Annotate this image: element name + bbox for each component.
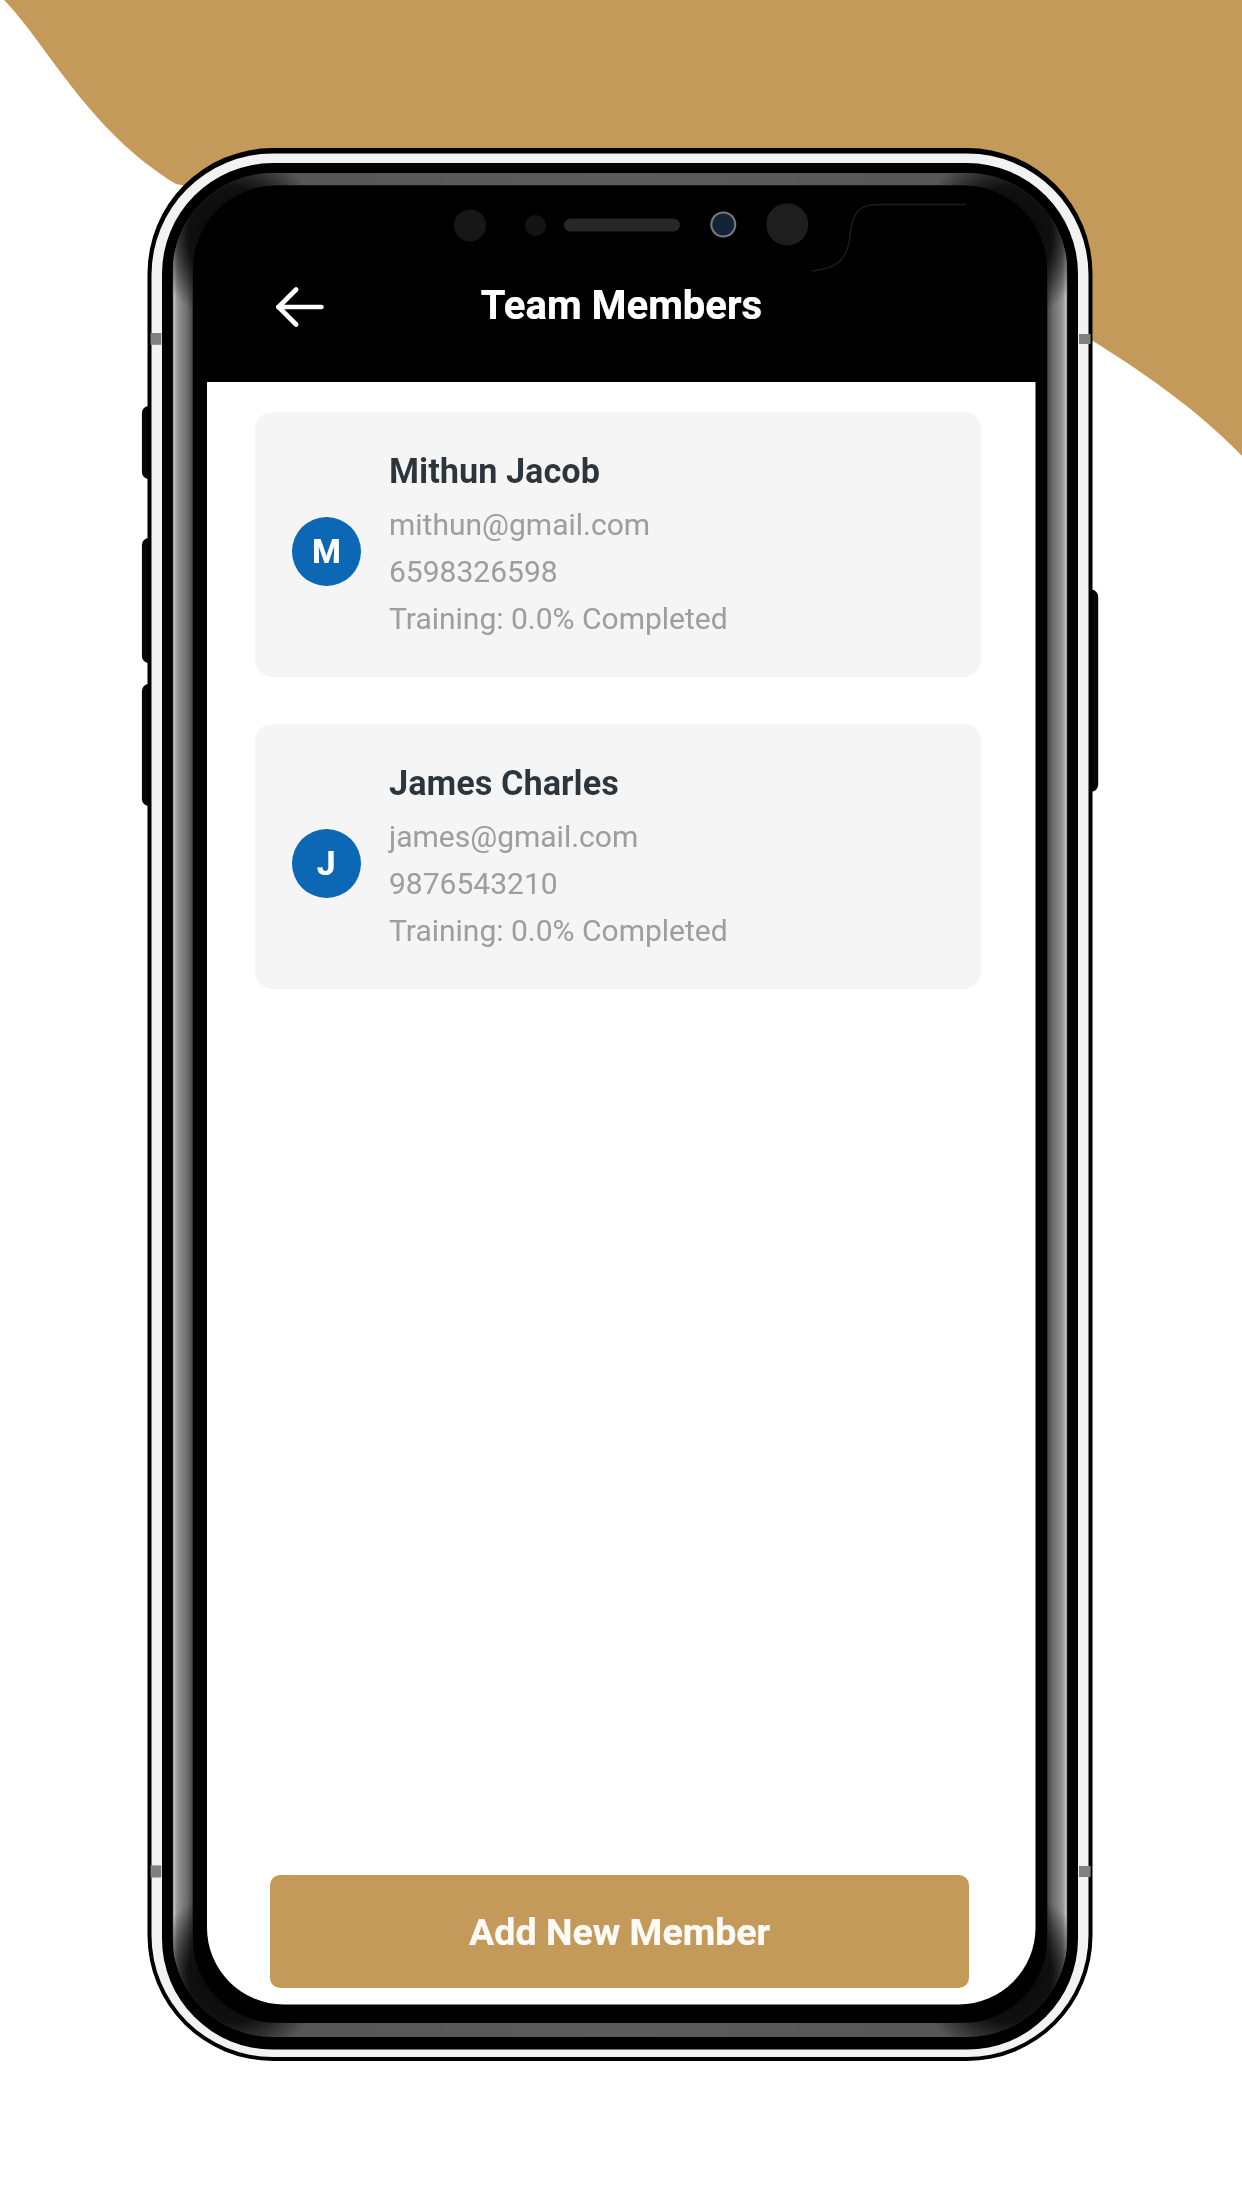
staticText: Mithun Jacob: [389, 451, 601, 491]
staticText: james@gmail.com: [389, 819, 639, 854]
staticText: 9876543210: [389, 866, 558, 901]
staticText: Team Members: [207, 282, 1036, 329]
staticText: 6598326598: [389, 554, 558, 589]
button[interactable]: Back: [262, 268, 342, 346]
staticText: James Charles: [389, 763, 619, 803]
button[interactable]: M: [255, 412, 981, 677]
staticText: Add New Member: [469, 1910, 771, 1954]
button[interactable]: J: [255, 724, 981, 989]
staticText: M: [312, 532, 341, 571]
staticText: Training: 0.0% Completed: [389, 601, 728, 636]
staticText: Training: 0.0% Completed: [389, 913, 728, 948]
staticText: mithun@gmail.com: [389, 507, 651, 542]
button[interactable]: Add New Member: [270, 1875, 969, 1988]
staticText: J: [317, 844, 336, 883]
